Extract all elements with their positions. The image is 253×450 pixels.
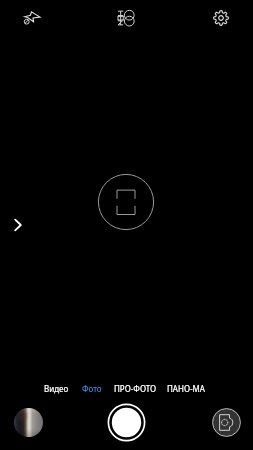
button[interactable]: Settings [203, 0, 239, 36]
button[interactable]: Видео [34, 378, 78, 398]
button[interactable]: ПАНО-МА [164, 378, 208, 398]
button[interactable]: Flash off [14, 0, 50, 36]
button[interactable]: Gallery [14, 408, 43, 437]
staticText: ПРО-ФОТО [114, 383, 157, 394]
button[interactable]: HDR and effects [108, 0, 144, 36]
button[interactable]: ПРО-ФОТО [113, 378, 157, 398]
staticText: ПАНО-МА [167, 383, 205, 394]
staticText: Видео [44, 383, 69, 394]
staticText: Фото [82, 383, 102, 394]
button[interactable]: Expand panel [2, 209, 34, 241]
button[interactable]: Take photo [107, 403, 146, 442]
button[interactable]: Switch camera [212, 408, 241, 437]
button[interactable]: Фото [70, 378, 114, 398]
